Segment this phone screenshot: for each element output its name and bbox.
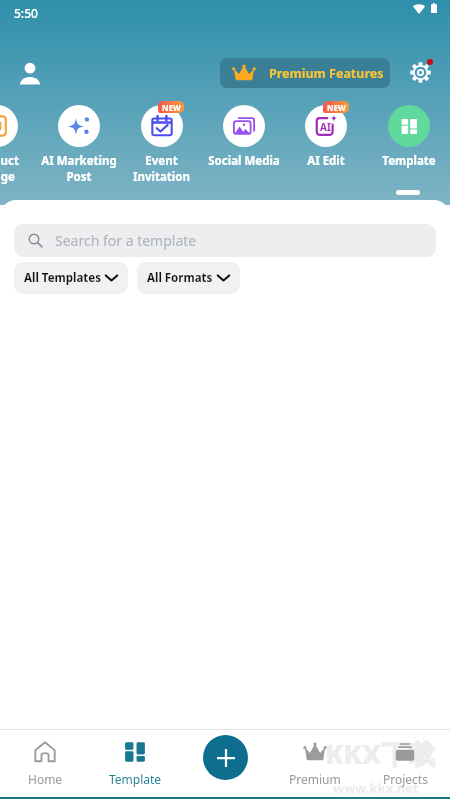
button[interactable]: Search for a template	[14, 224, 436, 257]
staticText: 5:50	[14, 5, 38, 21]
button[interactable]: Profile	[12, 55, 48, 91]
button[interactable]: Projects	[360, 735, 450, 795]
staticText: Search for a template	[55, 231, 197, 250]
staticText: AI	[320, 120, 331, 134]
staticText: Post	[66, 169, 92, 185]
staticText: All Formats	[147, 270, 213, 286]
staticText: Template	[109, 771, 162, 787]
staticText: NEW	[162, 102, 181, 113]
staticText: Projects	[383, 771, 428, 787]
staticText: NEW	[327, 102, 346, 113]
button[interactable]: AI Marketing	[39, 105, 119, 185]
button[interactable]: Event	[121, 105, 201, 185]
staticText: Template	[382, 153, 436, 169]
staticText: Event	[145, 153, 178, 169]
button[interactable]: Social Media	[204, 105, 284, 185]
button[interactable]: Home	[0, 735, 90, 795]
button[interactable]: Premium	[270, 735, 360, 795]
button[interactable]: All Templates	[14, 262, 128, 294]
staticText: KKX下载	[325, 735, 436, 772]
staticText: All Templates	[24, 270, 101, 286]
staticText: Premium	[289, 771, 341, 787]
staticText: www.kkx.net	[333, 779, 419, 797]
button[interactable]: Template	[369, 105, 449, 185]
staticText: Invitation	[133, 169, 190, 185]
staticText: Image	[0, 169, 15, 185]
button[interactable]: All Formats	[137, 262, 240, 294]
staticText: Social Media	[208, 153, 280, 169]
button[interactable]: Template	[90, 735, 180, 795]
staticText: Product	[0, 153, 19, 169]
button[interactable]: Create	[203, 735, 248, 780]
button[interactable]: Settings	[402, 54, 438, 90]
staticText: Home	[28, 771, 63, 787]
staticText: AI Edit	[307, 153, 345, 169]
button[interactable]: Product	[0, 105, 36, 185]
staticText: AI Marketing	[41, 153, 117, 169]
button[interactable]: AI	[286, 105, 366, 185]
button[interactable]: Premium Features	[220, 58, 390, 88]
staticText: Premium Features	[269, 65, 384, 82]
